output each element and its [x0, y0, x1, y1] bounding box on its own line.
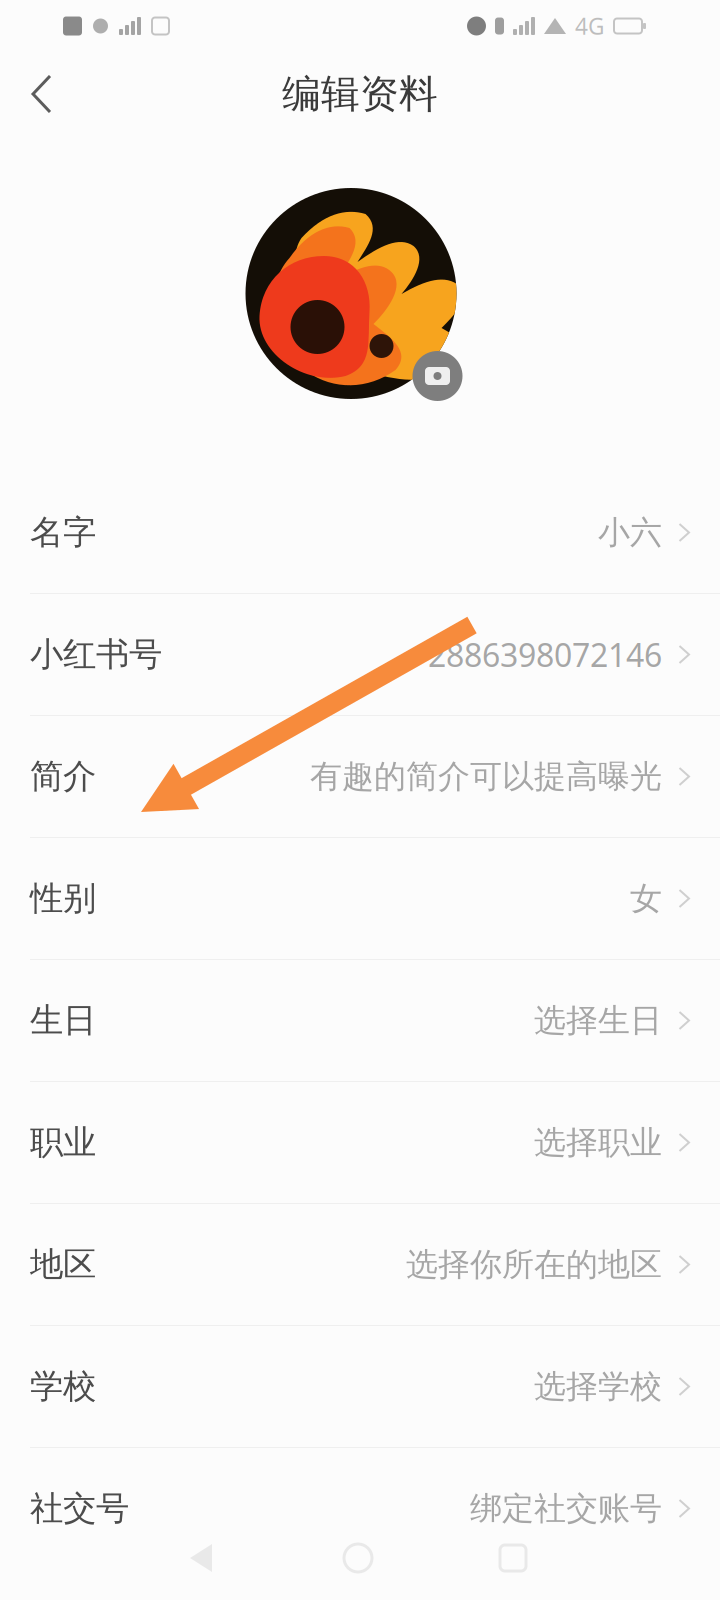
staticText: 选择你所在的地区 — [406, 1245, 662, 1284]
button[interactable]: Back — [0, 52, 86, 136]
button[interactable]: 学校 — [0, 1326, 720, 1447]
staticText: 生日 — [30, 1000, 96, 1041]
staticText: 选择生日 — [534, 1001, 662, 1040]
button[interactable]: 小红书号 — [0, 594, 720, 715]
staticText: 简介 — [30, 756, 96, 797]
staticText: 地区 — [30, 1244, 96, 1285]
button[interactable]: 生日 — [0, 960, 720, 1081]
button[interactable]: Home — [326, 1526, 390, 1590]
button[interactable]: Change profile photo — [245, 188, 456, 399]
button[interactable]: 简介 — [0, 716, 720, 837]
staticText: 绑定社交账号 — [470, 1489, 662, 1528]
staticText: 小红书号 — [30, 634, 162, 675]
button[interactable]: 社交号 — [0, 1448, 720, 1569]
button[interactable]: 名字 — [0, 472, 720, 593]
staticText: 小六 — [598, 513, 662, 552]
button[interactable]: 地区 — [0, 1204, 720, 1325]
staticText: 学校 — [30, 1366, 96, 1407]
staticText: 选择职业 — [534, 1123, 662, 1162]
button[interactable]: 职业 — [0, 1082, 720, 1203]
staticText: 职业 — [30, 1122, 96, 1163]
staticText: 4G — [575, 11, 605, 41]
staticText: 2886398072146 — [428, 633, 662, 676]
staticText: 有趣的简介可以提高曝光 — [310, 757, 662, 796]
staticText: 社交号 — [30, 1488, 129, 1529]
staticText: 名字 — [30, 512, 96, 553]
staticText: 编辑资料 — [282, 70, 438, 118]
staticText: 女 — [630, 879, 662, 918]
button[interactable]: Back — [171, 1526, 231, 1590]
staticText: 选择学校 — [534, 1367, 662, 1406]
button[interactable]: 性别 — [0, 838, 720, 959]
button[interactable]: Recents — [481, 1526, 545, 1590]
staticText: 性别 — [30, 878, 96, 919]
